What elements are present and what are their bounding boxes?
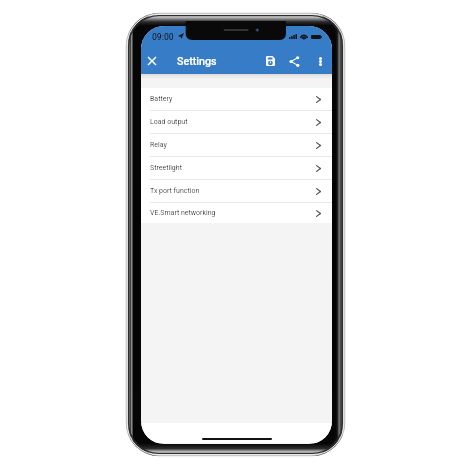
button[interactable]: VE.Smart networking bbox=[141, 203, 332, 223]
button[interactable]: Close bbox=[143, 52, 160, 69]
button[interactable]: Load output bbox=[141, 111, 332, 133]
staticText: Tx port function bbox=[150, 187, 200, 195]
staticText: 09:00 bbox=[152, 32, 174, 42]
staticText: Settings bbox=[177, 55, 217, 68]
staticText: Relay bbox=[150, 141, 167, 149]
button[interactable]: Tx port function bbox=[141, 180, 332, 202]
button[interactable]: More options bbox=[311, 52, 329, 70]
staticText: VE.Smart networking bbox=[150, 209, 216, 217]
button[interactable]: Relay bbox=[141, 134, 332, 156]
staticText: Load output bbox=[150, 118, 188, 126]
button[interactable]: Streetlight bbox=[141, 157, 332, 179]
staticText: Battery bbox=[150, 95, 173, 103]
button[interactable]: Save bbox=[261, 52, 279, 70]
button[interactable]: Share bbox=[285, 52, 303, 70]
button[interactable]: Battery bbox=[141, 88, 332, 110]
staticText: Streetlight bbox=[150, 164, 182, 172]
